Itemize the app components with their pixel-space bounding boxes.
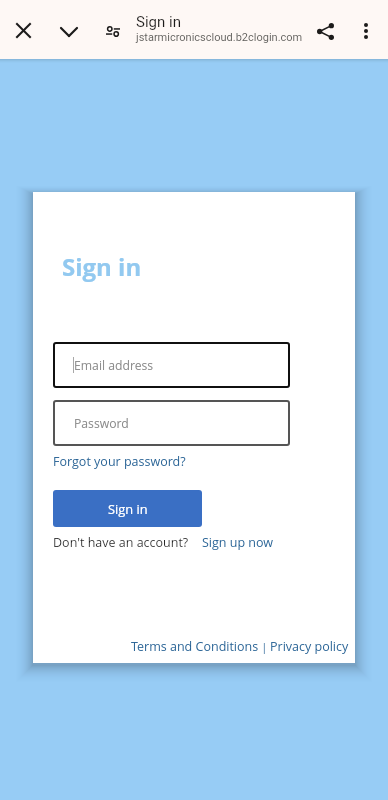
staticText: jstarmicronicscloud.b2clogin.com bbox=[136, 31, 303, 44]
button[interactable]: Sign up now bbox=[202, 534, 274, 551]
staticText: Don't have an account? bbox=[53, 534, 189, 551]
staticText: Sign in bbox=[136, 13, 181, 31]
staticText: Sign in bbox=[108, 500, 148, 517]
staticText: Email address bbox=[74, 357, 154, 374]
button[interactable]: Share bbox=[305, 11, 345, 51]
button[interactable]: Forgot your password? bbox=[53, 453, 186, 470]
button[interactable]: Email address bbox=[53, 342, 290, 388]
button[interactable]: Privacy policy bbox=[270, 638, 349, 655]
staticText: Sign in bbox=[62, 250, 142, 283]
staticText: | bbox=[259, 640, 270, 654]
button[interactable]: Sign in bbox=[53, 490, 202, 527]
button[interactable]: More options bbox=[346, 11, 386, 51]
button[interactable]: Password bbox=[53, 400, 290, 446]
button[interactable]: Site settings bbox=[93, 11, 133, 51]
staticText: Password bbox=[74, 415, 129, 432]
button[interactable]: Terms and Conditions bbox=[131, 638, 259, 655]
button[interactable]: Expand bbox=[48, 11, 89, 52]
button[interactable]: Close bbox=[3, 10, 43, 50]
